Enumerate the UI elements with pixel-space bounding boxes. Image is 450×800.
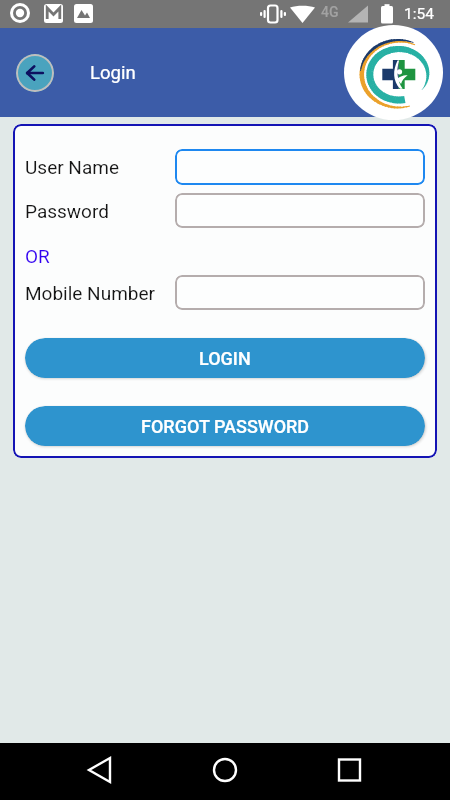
button[interactable]: Back xyxy=(16,54,54,92)
button[interactable] xyxy=(175,275,425,310)
staticText: LOGIN xyxy=(199,348,251,369)
staticText: Mobile Number xyxy=(25,282,155,304)
staticText: FORGOT PASSWORD xyxy=(141,416,310,437)
staticText: 4G xyxy=(321,4,339,20)
button[interactable]: LOGIN xyxy=(25,338,425,378)
button[interactable] xyxy=(175,149,425,185)
button[interactable] xyxy=(175,193,425,228)
staticText: Login xyxy=(90,62,136,84)
staticText: OR xyxy=(25,245,50,267)
staticText: 1:54 xyxy=(404,5,434,23)
staticText: Password xyxy=(25,200,109,222)
staticText: User Name xyxy=(25,156,119,178)
button[interactable]: FORGOT PASSWORD xyxy=(25,406,425,446)
